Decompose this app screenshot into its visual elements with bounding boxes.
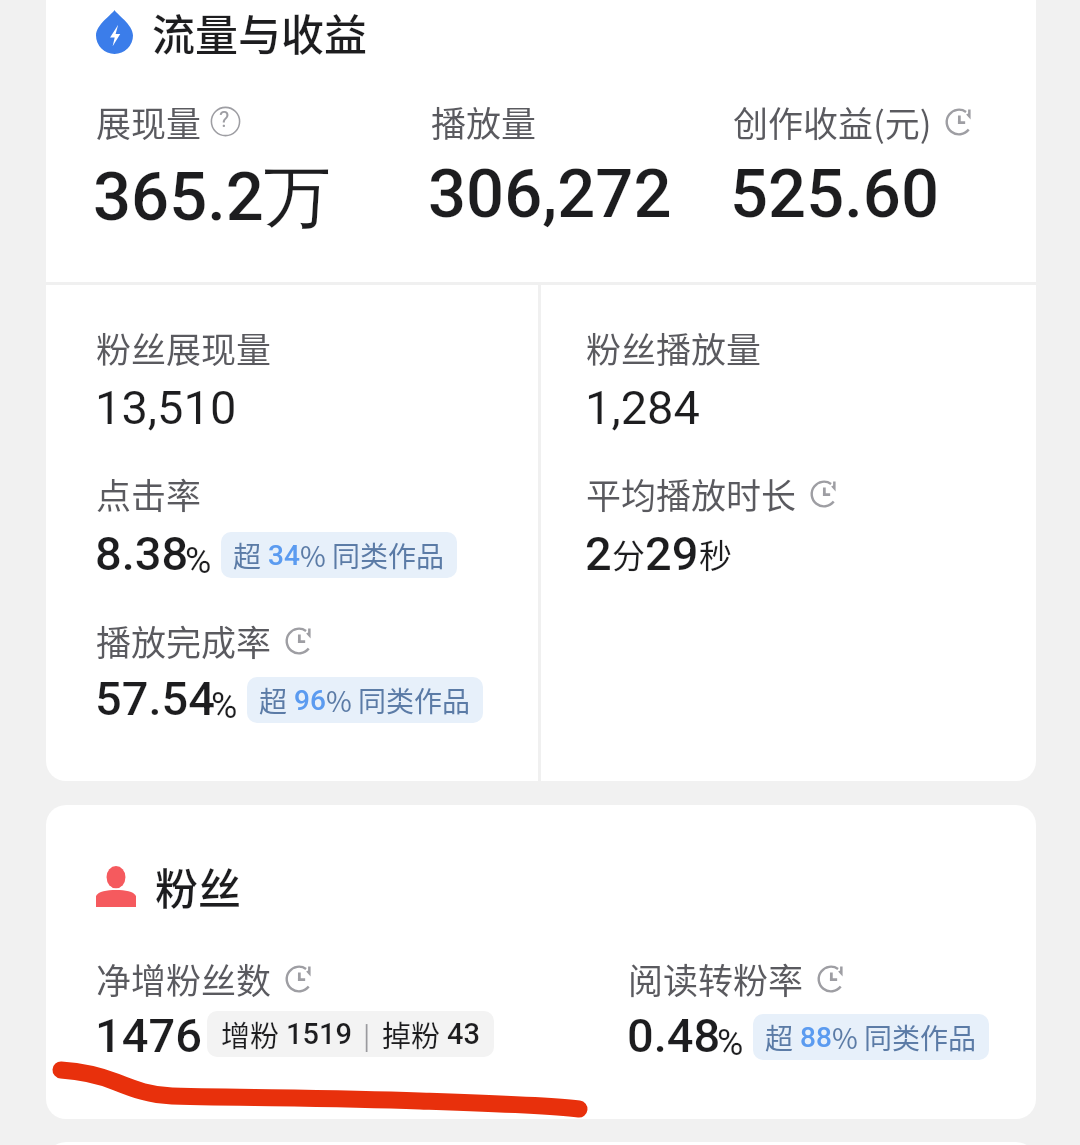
staticText: 34 — [268, 539, 300, 572]
staticText: % — [211, 685, 238, 727]
button[interactable]: 粉丝播放量 — [586, 322, 762, 373]
button[interactable]: 粉丝 — [46, 853, 1036, 919]
staticText: 1,284 — [585, 380, 700, 435]
button[interactable]: 粉丝展现量 — [96, 322, 272, 373]
staticText: 13,510 — [95, 380, 237, 435]
button[interactable]: 超 — [753, 1014, 989, 1060]
staticText: 展现量 — [96, 96, 202, 147]
button[interactable]: 播放完成率 — [96, 615, 315, 666]
staticText: 粉丝 — [155, 855, 241, 917]
staticText: 超 — [765, 1017, 800, 1058]
staticText: 8.38 — [95, 526, 189, 581]
staticText: 分 — [612, 530, 645, 578]
other: Data updated later — [943, 106, 975, 138]
staticText: 平均播放时长 — [586, 468, 797, 519]
other: Data updated later — [808, 478, 840, 510]
staticText: 粉丝展现量 — [96, 322, 272, 373]
staticText: % 同类作品 — [300, 535, 445, 576]
staticText: 阅读转粉率 — [628, 953, 804, 1004]
staticText: 0.48 — [627, 1008, 721, 1063]
staticText: 流量与收益 — [152, 1, 367, 63]
staticText: 粉丝播放量 — [586, 322, 762, 373]
staticText: 57.54 — [95, 671, 215, 726]
staticText: 播放量 — [431, 96, 537, 147]
button[interactable]: 超 — [247, 677, 483, 723]
staticText: 43 — [447, 1017, 480, 1051]
staticText: 创作收益(元) — [733, 96, 932, 147]
other: Data updated later — [815, 963, 847, 995]
button[interactable]: 点击率 — [96, 468, 202, 519]
button[interactable]: 展现量 — [96, 96, 241, 147]
button[interactable]: 超 — [221, 532, 457, 578]
staticText: % — [717, 1022, 744, 1064]
staticText: 525.60 — [730, 155, 940, 234]
staticText: % 同类作品 — [326, 680, 471, 721]
staticText: 点击率 — [96, 468, 202, 519]
button[interactable]: 平均播放时长 — [586, 468, 840, 519]
button[interactable]: 增粉 — [207, 1011, 494, 1057]
staticText: 2 — [585, 526, 612, 581]
staticText: 超 — [233, 535, 268, 576]
button[interactable]: 播放量 — [431, 96, 537, 147]
staticText: % 同类作品 — [832, 1017, 977, 1058]
button[interactable]: 创作收益(元) — [733, 96, 975, 147]
button[interactable]: 流量与收益 — [46, 0, 1036, 66]
staticText: 秒 — [699, 530, 732, 578]
staticText: 增粉 — [221, 1013, 286, 1055]
staticText: 88 — [800, 1021, 832, 1054]
staticText: 超 — [259, 680, 294, 721]
staticText: % — [185, 540, 212, 582]
button[interactable]: What is impressions? — [210, 106, 241, 137]
other: Data updated later — [283, 625, 315, 657]
staticText: | — [352, 1016, 382, 1052]
staticText: 净增粉丝数 — [96, 953, 272, 1004]
staticText: 96 — [294, 684, 326, 717]
other: Data updated later — [283, 963, 315, 995]
staticText: 1519 — [286, 1017, 352, 1051]
button[interactable]: 阅读转粉率 — [628, 953, 847, 1004]
staticText: 306,272 — [428, 155, 672, 234]
staticText: 365.2万 — [93, 155, 331, 239]
button[interactable]: 净增粉丝数 — [96, 953, 315, 1004]
staticText: 29 — [645, 526, 699, 581]
staticText: ? — [219, 107, 230, 132]
staticText: 掉粉 — [382, 1013, 447, 1055]
staticText: 1476 — [95, 1008, 202, 1063]
staticText: 播放完成率 — [96, 615, 272, 666]
